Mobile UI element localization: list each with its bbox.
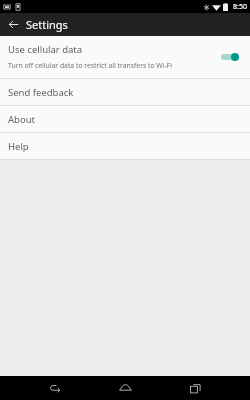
button[interactable]: Help [0,133,250,159]
staticText: Send feedback [8,86,74,99]
button[interactable]: Back [0,13,26,36]
button[interactable]: Back [40,376,70,400]
button[interactable]: Recent apps [180,376,210,400]
staticText: Turn off cellular data to restrict all t… [8,61,172,70]
button[interactable]: About [0,106,250,132]
button[interactable]: Home [110,376,140,400]
button[interactable]: Use cellular data [0,36,250,78]
staticText: 8:50 [233,2,247,12]
button[interactable]: Send feedback [0,79,250,105]
staticText: Use cellular data [8,43,83,56]
staticText: Help [8,140,29,153]
button[interactable]: Use cellular data toggle [218,49,242,65]
staticText: Settings [26,17,68,32]
staticText: About [8,113,35,126]
